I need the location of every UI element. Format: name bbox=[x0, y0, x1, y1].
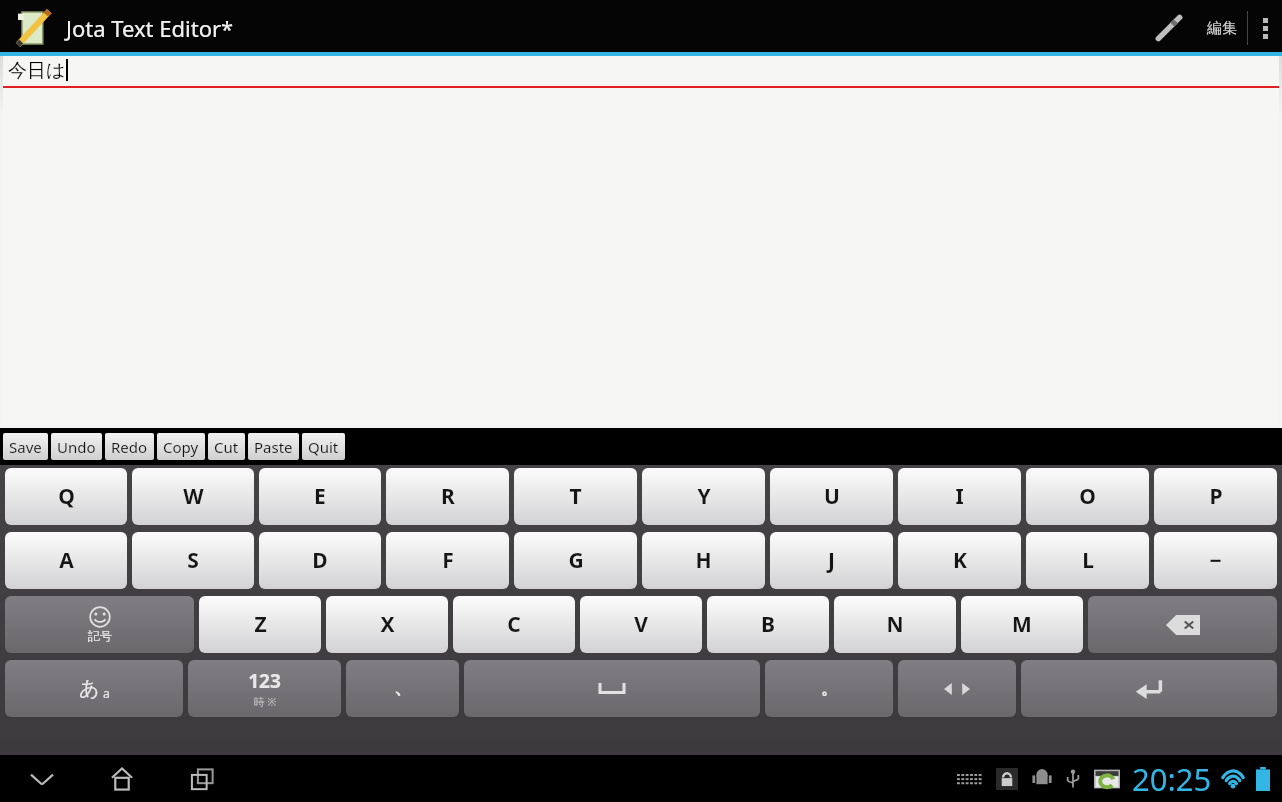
button[interactable]: あ bbox=[5, 660, 183, 717]
staticText: Quit bbox=[308, 437, 339, 457]
button[interactable]: Z bbox=[199, 596, 321, 653]
staticText: U bbox=[824, 482, 840, 511]
button[interactable]: H bbox=[642, 532, 765, 589]
staticText: J bbox=[828, 546, 835, 575]
staticText: B bbox=[761, 610, 775, 639]
button[interactable]: N bbox=[834, 596, 956, 653]
button[interactable]: Y bbox=[642, 468, 765, 525]
button[interactable]: I bbox=[898, 468, 1021, 525]
button[interactable]: W bbox=[132, 468, 254, 525]
button[interactable]: R bbox=[386, 468, 509, 525]
button[interactable]: Paste bbox=[248, 433, 299, 460]
button[interactable]: Backspace bbox=[1088, 596, 1277, 653]
staticText: 記号 bbox=[88, 628, 112, 643]
staticText: Redo bbox=[111, 437, 148, 457]
button[interactable]: L bbox=[1026, 532, 1149, 589]
button[interactable]: V bbox=[580, 596, 702, 653]
staticText: C bbox=[507, 610, 521, 639]
staticText: G bbox=[568, 546, 584, 575]
button[interactable]: Edit mode bbox=[1141, 0, 1197, 56]
button[interactable]: 、 bbox=[346, 660, 459, 717]
staticText: N bbox=[886, 610, 904, 639]
staticText: H bbox=[695, 546, 712, 575]
staticText: T bbox=[569, 482, 582, 511]
button[interactable]: E bbox=[259, 468, 381, 525]
button[interactable]: T bbox=[514, 468, 637, 525]
staticText: − bbox=[1209, 546, 1222, 575]
staticText: D bbox=[312, 546, 328, 575]
staticText: Z bbox=[254, 610, 267, 639]
staticText: R bbox=[441, 482, 455, 511]
button[interactable]: D bbox=[259, 532, 381, 589]
staticText: A bbox=[59, 546, 74, 575]
staticText: K bbox=[953, 546, 967, 575]
staticText: Cut bbox=[214, 437, 239, 457]
button[interactable]: Copy bbox=[157, 433, 205, 460]
button[interactable]: Undo bbox=[51, 433, 102, 460]
button[interactable]: Enter bbox=[1021, 660, 1277, 717]
staticText: a bbox=[100, 685, 110, 701]
button[interactable]: Cut bbox=[208, 433, 245, 460]
staticText: E bbox=[314, 482, 326, 511]
staticText: M bbox=[1012, 610, 1032, 639]
staticText: 今日は bbox=[8, 59, 66, 83]
button[interactable]: S bbox=[132, 532, 254, 589]
button[interactable]: Recent apps bbox=[180, 757, 224, 801]
staticText: F bbox=[442, 546, 454, 575]
button[interactable]: More options bbox=[1248, 0, 1282, 56]
staticText: W bbox=[183, 482, 204, 511]
button[interactable]: M bbox=[961, 596, 1083, 653]
other: Space bbox=[599, 683, 625, 694]
staticText: Undo bbox=[57, 437, 96, 457]
button[interactable]: Home bbox=[100, 757, 144, 801]
staticText: Q bbox=[58, 482, 75, 511]
staticText: Paste bbox=[254, 437, 293, 457]
button[interactable]: O bbox=[1026, 468, 1149, 525]
button[interactable]: Redo bbox=[105, 433, 154, 460]
staticText: 時 ※ bbox=[253, 694, 277, 709]
button[interactable]: C bbox=[453, 596, 575, 653]
button[interactable]: J bbox=[770, 532, 893, 589]
other: Move cursor bbox=[944, 683, 970, 695]
staticText: P bbox=[1209, 482, 1223, 511]
staticText: Copy bbox=[163, 437, 199, 457]
button[interactable]: F bbox=[386, 532, 509, 589]
staticText: 編集 bbox=[1207, 19, 1237, 38]
button[interactable]: Quit bbox=[302, 433, 345, 460]
button[interactable]: U bbox=[770, 468, 893, 525]
staticText: Save bbox=[9, 437, 42, 457]
button[interactable]: Hide keyboard bbox=[20, 757, 64, 801]
button[interactable]: Space bbox=[464, 660, 760, 717]
staticText: Jota Text Editor* bbox=[66, 13, 234, 43]
staticText: 123 bbox=[248, 668, 281, 694]
staticText: S bbox=[187, 546, 199, 575]
button[interactable]: 記号 bbox=[5, 596, 194, 653]
button[interactable]: 123 bbox=[188, 660, 341, 717]
button[interactable]: Move cursor bbox=[898, 660, 1016, 717]
button[interactable]: − bbox=[1154, 532, 1277, 589]
other: Enter bbox=[1134, 678, 1164, 700]
button[interactable]: Q bbox=[5, 468, 127, 525]
staticText: I bbox=[955, 482, 964, 511]
staticText: 。 bbox=[821, 679, 837, 699]
button[interactable]: P bbox=[1154, 468, 1277, 525]
other: Backspace bbox=[1166, 615, 1200, 635]
staticText: V bbox=[634, 610, 648, 639]
button[interactable]: 今日は bbox=[3, 56, 1279, 425]
staticText: X bbox=[380, 610, 395, 639]
staticText: O bbox=[1079, 482, 1096, 511]
button[interactable]: G bbox=[514, 532, 637, 589]
button[interactable]: A bbox=[5, 532, 127, 589]
button[interactable]: 。 bbox=[765, 660, 893, 717]
staticText: 20:25 bbox=[1132, 758, 1212, 800]
button[interactable]: B bbox=[707, 596, 829, 653]
button[interactable]: X bbox=[326, 596, 448, 653]
button[interactable]: K bbox=[898, 532, 1021, 589]
staticText: 、 bbox=[394, 677, 412, 700]
button[interactable]: Save bbox=[3, 433, 48, 460]
button[interactable]: 編集 bbox=[1197, 0, 1247, 56]
staticText: Y bbox=[697, 482, 711, 511]
staticText: L bbox=[1082, 546, 1094, 575]
staticText: あ bbox=[79, 676, 100, 701]
